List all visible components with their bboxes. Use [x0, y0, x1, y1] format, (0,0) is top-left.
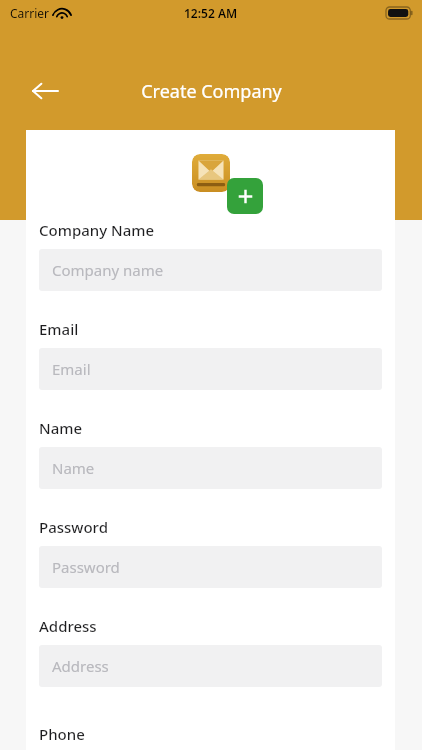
staticText: Password — [39, 517, 108, 537]
button[interactable]: Back — [22, 68, 68, 114]
staticText: Address — [52, 656, 109, 676]
staticText: Password — [52, 557, 120, 577]
staticText: Phone — [39, 724, 85, 744]
staticText: Email — [39, 319, 79, 339]
button[interactable]: Password — [39, 546, 382, 588]
button[interactable]: Add logo — [227, 178, 263, 214]
staticText: Create Company — [141, 79, 282, 104]
staticText: 12:52 AM — [184, 5, 238, 21]
staticText: Company Name — [39, 220, 155, 240]
staticText: Address — [39, 616, 97, 636]
staticText: Name — [52, 458, 95, 478]
button[interactable]: Name — [39, 447, 382, 489]
staticText: Carrier — [10, 5, 50, 21]
button[interactable]: Email — [39, 348, 382, 390]
button[interactable]: Company logo — [192, 154, 230, 192]
button[interactable]: Address — [39, 645, 382, 687]
button[interactable]: Company name — [39, 249, 382, 291]
staticText: Name — [39, 418, 83, 438]
staticText: Email — [52, 359, 91, 379]
staticText: Company name — [52, 260, 164, 280]
